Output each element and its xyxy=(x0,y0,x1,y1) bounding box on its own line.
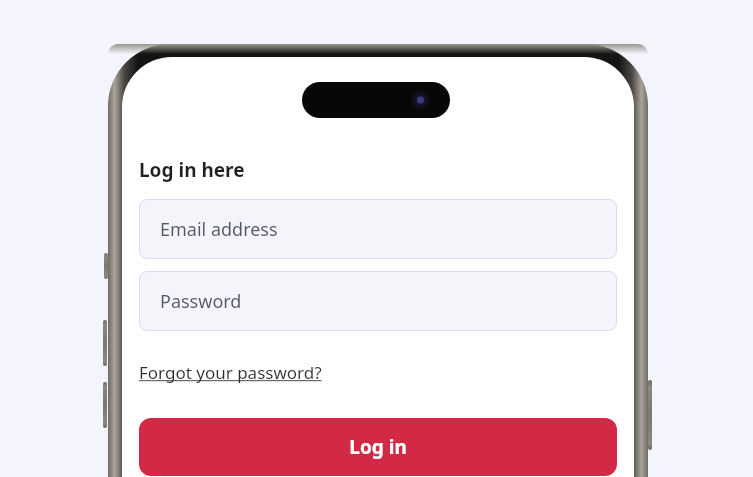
button[interactable]: Forgot your password? xyxy=(139,359,322,386)
button[interactable]: Side button xyxy=(103,382,107,428)
staticText: Email address xyxy=(160,217,278,242)
button[interactable]: Side button xyxy=(103,320,107,366)
button[interactable]: Side button xyxy=(104,253,108,279)
staticText: Password xyxy=(160,289,242,314)
button[interactable]: Side button xyxy=(648,380,652,450)
button[interactable]: Password xyxy=(139,271,617,331)
staticText: Forgot your password? xyxy=(139,361,322,384)
staticText: Log in here xyxy=(139,157,245,183)
button[interactable]: Email address xyxy=(139,199,617,259)
button[interactable]: Log in xyxy=(139,418,617,476)
staticText: Log in xyxy=(349,434,407,460)
